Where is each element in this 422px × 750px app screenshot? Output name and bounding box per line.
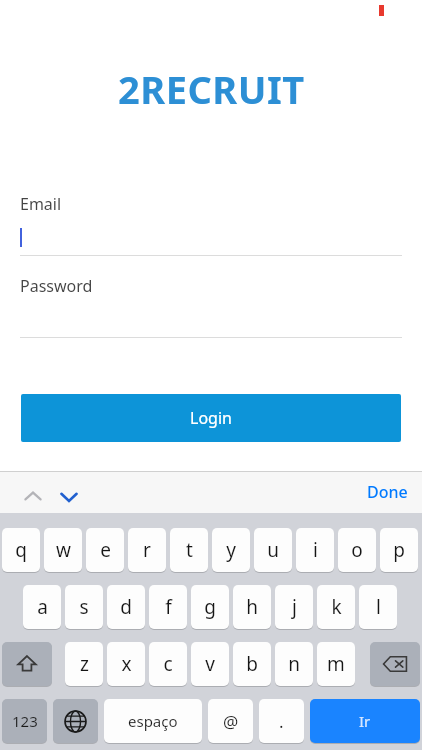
button[interactable]: @: [208, 699, 253, 743]
staticText: 123: [12, 711, 38, 731]
button[interactable]: p: [380, 528, 418, 572]
staticText: o: [351, 537, 363, 563]
button[interactable]: a: [23, 585, 61, 629]
button[interactable]: Numbers: [2, 699, 47, 743]
button[interactable]: g: [191, 585, 229, 629]
button[interactable]: q: [2, 528, 40, 572]
button[interactable]: m: [317, 642, 355, 686]
staticText: Email: [20, 193, 62, 215]
staticText: r: [143, 537, 151, 563]
staticText: n: [288, 651, 300, 677]
staticText: t: [186, 537, 193, 563]
button[interactable]: Done: [367, 481, 408, 503]
button[interactable]: d: [107, 585, 145, 629]
staticText: a: [37, 594, 48, 620]
staticText: espaço: [128, 711, 178, 731]
button[interactable]: e: [86, 528, 124, 572]
button[interactable]: Backspace: [370, 642, 420, 686]
button[interactable]: espaço: [104, 699, 202, 743]
staticText: x: [121, 651, 132, 677]
staticText: j: [292, 594, 297, 620]
button[interactable]: c: [149, 642, 187, 686]
button[interactable]: r: [128, 528, 166, 572]
staticText: m: [327, 651, 345, 677]
staticText: p: [393, 537, 405, 563]
staticText: u: [267, 537, 279, 563]
button[interactable]: y: [212, 528, 250, 572]
button[interactable]: u: [254, 528, 292, 572]
staticText: i: [313, 537, 318, 563]
button[interactable]: i: [296, 528, 334, 572]
staticText: c: [163, 651, 173, 677]
button[interactable]: z: [65, 642, 103, 686]
button[interactable]: Next field: [52, 480, 86, 514]
staticText: h: [246, 594, 258, 620]
button[interactable]: Ir: [310, 699, 420, 743]
staticText: f: [165, 594, 172, 620]
button[interactable]: t: [170, 528, 208, 572]
button[interactable]: o: [338, 528, 376, 572]
staticText: v: [205, 651, 215, 677]
staticText: Login: [190, 407, 232, 429]
staticText: 2RECRUIT: [118, 63, 305, 115]
button[interactable]: Shift: [2, 642, 52, 686]
staticText: Done: [367, 481, 408, 503]
button[interactable]: w: [44, 528, 82, 572]
staticText: l: [376, 594, 381, 620]
staticText: e: [100, 537, 111, 563]
button[interactable]: Login: [21, 394, 401, 442]
staticText: Ir: [359, 711, 371, 731]
button[interactable]: h: [233, 585, 271, 629]
button[interactable]: Previous field: [16, 480, 50, 514]
button[interactable]: Change keyboard: [53, 699, 98, 743]
staticText: y: [226, 537, 236, 563]
staticText: q: [15, 537, 27, 563]
staticText: .: [279, 710, 284, 733]
button[interactable]: f: [149, 585, 187, 629]
staticText: b: [246, 651, 258, 677]
staticText: w: [56, 537, 71, 563]
staticText: z: [80, 651, 89, 677]
button[interactable]: j: [275, 585, 313, 629]
staticText: d: [120, 594, 132, 620]
button[interactable]: n: [275, 642, 313, 686]
button[interactable]: .: [259, 699, 304, 743]
button[interactable]: l: [359, 585, 397, 629]
button[interactable]: b: [233, 642, 271, 686]
staticText: g: [204, 594, 216, 620]
button[interactable]: v: [191, 642, 229, 686]
staticText: s: [79, 594, 89, 620]
staticText: Password: [20, 275, 93, 297]
staticText: @: [223, 710, 239, 733]
button[interactable]: s: [65, 585, 103, 629]
button[interactable]: k: [317, 585, 355, 629]
button[interactable]: x: [107, 642, 145, 686]
staticText: k: [331, 594, 342, 620]
